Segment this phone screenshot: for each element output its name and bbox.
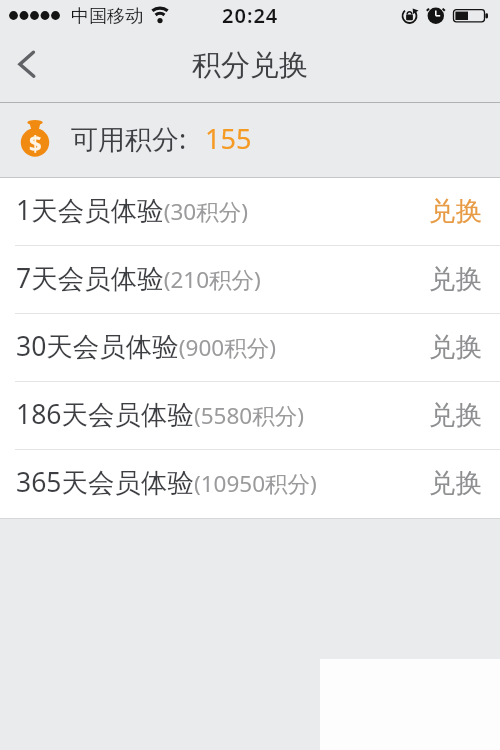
staticText: 1天会员体验(30积分) [16, 192, 248, 228]
button[interactable]: 兑换 [429, 194, 482, 227]
button[interactable]: 186天会员体验(5580积分) [0, 382, 500, 450]
staticText: 186天会员体验(5580积分) [16, 396, 304, 432]
button[interactable]: 30天会员体验(900积分) [0, 314, 500, 382]
staticText: 兑换 [429, 466, 482, 499]
staticText: 兑换 [429, 330, 482, 363]
staticText: 7天会员体验(210积分) [16, 260, 261, 296]
staticText: 积分兑换 [192, 47, 308, 84]
button[interactable]: 365天会员体验(10950积分) [0, 450, 500, 518]
button[interactable]: 1天会员体验(30积分) [0, 178, 500, 246]
button[interactable]: 兑换 [429, 330, 482, 363]
staticText: 155 [205, 120, 252, 157]
staticText: $ [29, 127, 42, 157]
button[interactable]: 兑换 [429, 398, 482, 431]
staticText: 365天会员体验(10950积分) [16, 464, 317, 500]
button[interactable]: 兑换 [429, 466, 482, 499]
staticText: 可用积分: [71, 120, 187, 157]
staticText: 兑换 [429, 194, 482, 227]
staticText: 30天会员体验(900积分) [16, 328, 276, 364]
button[interactable]: 7天会员体验(210积分) [0, 246, 500, 314]
button[interactable]: 兑换 [429, 262, 482, 295]
button[interactable] [8, 44, 44, 84]
staticText: 兑换 [429, 398, 482, 431]
staticText: 20:24 [222, 2, 279, 29]
staticText: 中国移动 [71, 5, 143, 28]
staticText: 兑换 [429, 262, 482, 295]
